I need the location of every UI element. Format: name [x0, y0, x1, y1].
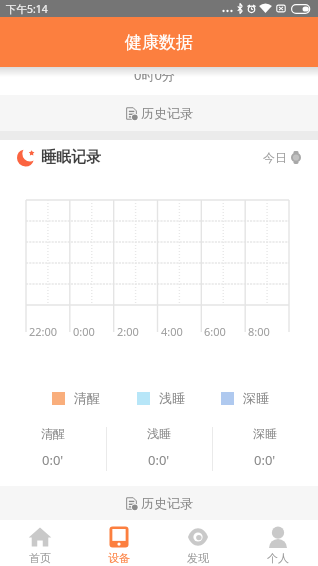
- staticText: 0:00: [73, 324, 95, 339]
- staticText: 设备: [108, 551, 130, 565]
- staticText: 0时0分: [134, 74, 175, 84]
- staticText: 个人: [267, 551, 289, 565]
- button[interactable]: 个人: [238, 520, 318, 566]
- button[interactable]: 发现: [158, 520, 238, 566]
- button[interactable]: 设备: [79, 520, 158, 566]
- staticText: 深睡: [253, 426, 277, 441]
- staticText: 4:00: [161, 324, 183, 339]
- staticText: 0:0': [42, 451, 64, 469]
- staticText: 睡眠记录: [41, 148, 101, 167]
- button[interactable]: 今日: [263, 150, 301, 165]
- button[interactable]: 历史记录: [0, 486, 318, 520]
- staticText: 历史记录: [141, 495, 193, 511]
- staticText: 浅睡: [147, 426, 171, 441]
- staticText: 浅睡: [159, 390, 185, 406]
- button[interactable]: 首页: [0, 520, 79, 566]
- staticText: 下午5:14: [6, 2, 48, 16]
- other: Device: [291, 151, 301, 164]
- staticText: 今日: [263, 150, 287, 165]
- staticText: 6:00: [204, 324, 226, 339]
- button[interactable]: 历史记录: [0, 95, 318, 131]
- staticText: 清醒: [74, 390, 100, 406]
- staticText: 历史记录: [141, 105, 193, 121]
- staticText: 深睡: [243, 390, 269, 406]
- staticText: 8:00: [248, 324, 270, 339]
- staticText: 0:0': [254, 451, 276, 469]
- staticText: 2:00: [117, 324, 139, 339]
- staticText: 健康数据: [125, 32, 193, 53]
- staticText: 发现: [187, 551, 209, 565]
- staticText: 0:0': [148, 451, 170, 469]
- staticText: 22:00: [29, 324, 58, 339]
- staticText: 首页: [29, 551, 51, 565]
- staticText: 清醒: [41, 426, 65, 441]
